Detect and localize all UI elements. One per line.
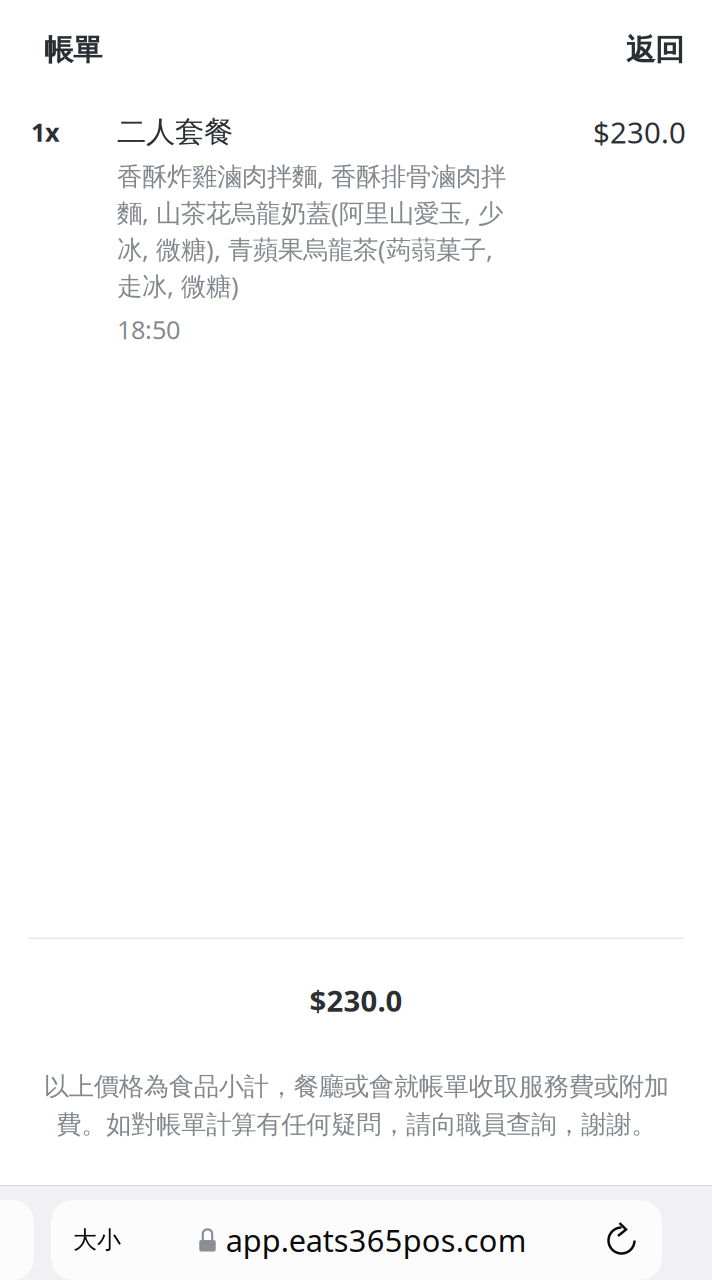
button[interactable]: Reload xyxy=(583,1200,662,1280)
staticText: 二人套餐 xyxy=(117,114,233,150)
staticText: 大小 xyxy=(73,1225,121,1255)
staticText: 香酥炸雞滷肉拌麵, 香酥排骨滷肉拌麵, 山茶花烏龍奶蓋(阿里山愛玉, 少冰, 微… xyxy=(117,159,506,303)
staticText: $230.0 xyxy=(593,112,686,151)
staticText: 帳單 xyxy=(44,32,102,68)
button[interactable]: app.eats365pos.com xyxy=(143,1200,583,1280)
staticText: 1x xyxy=(31,115,60,149)
staticText: 以上價格為食品小計，餐廳或會就帳單收取服務費或附加費。如對帳單計算有任何疑問，請… xyxy=(43,1071,668,1140)
staticText: app.eats365pos.com xyxy=(226,1220,527,1260)
staticText: $230.0 xyxy=(309,981,402,1020)
staticText: 18:50 xyxy=(117,313,180,346)
button[interactable]: 返回 xyxy=(626,32,684,68)
staticText: 返回 xyxy=(626,32,684,68)
button[interactable]: Page zoom xyxy=(51,1200,143,1280)
